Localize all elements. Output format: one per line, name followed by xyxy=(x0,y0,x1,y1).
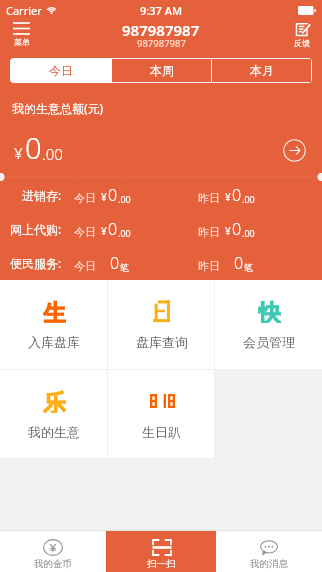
staticText: 今日 xyxy=(74,259,96,273)
staticText: ¥ xyxy=(101,190,107,204)
staticText: ¥ xyxy=(14,143,23,163)
staticText: .00 xyxy=(118,193,131,205)
staticText: 0 xyxy=(108,218,118,240)
staticText: 盘库查询 xyxy=(136,334,188,350)
staticText: 乐 xyxy=(43,389,66,413)
staticText: .00 xyxy=(118,227,131,239)
button[interactable]: 本月 xyxy=(212,59,311,82)
button[interactable]: 今日 xyxy=(11,59,111,82)
staticText: 今日 xyxy=(74,225,96,239)
button[interactable]: 生日趴 xyxy=(108,370,215,458)
staticText: 0 xyxy=(234,252,244,274)
staticText: 我的金币 xyxy=(34,558,72,570)
staticText: 本月 xyxy=(250,63,274,78)
staticText: 入库盘库 xyxy=(28,334,80,350)
staticText: Carrier xyxy=(6,3,42,18)
button[interactable]: 扫一扫 xyxy=(106,530,216,572)
staticText: 反馈 xyxy=(294,38,310,48)
staticText: 生 xyxy=(43,299,66,323)
staticText: 昨日 xyxy=(198,259,220,273)
button[interactable]: 便民服务: xyxy=(0,246,322,280)
staticText: .00 xyxy=(242,227,255,239)
staticText: ¥ xyxy=(225,190,231,204)
button[interactable]: 生 xyxy=(0,280,108,369)
button[interactable]: 我的消息 xyxy=(216,530,322,572)
button[interactable]: 菜单 xyxy=(8,20,35,49)
staticText: 笔 xyxy=(244,262,253,273)
staticText: 987987987 xyxy=(122,20,200,40)
staticText: ¥ xyxy=(101,224,107,238)
staticText: 本周 xyxy=(150,63,174,78)
staticText: ¥ xyxy=(225,224,231,238)
staticText: 昨日 xyxy=(198,191,220,205)
staticText: .00 xyxy=(242,193,255,205)
staticText: 0 xyxy=(108,184,118,206)
staticText: 会员管理 xyxy=(243,334,295,350)
staticText: 0 xyxy=(25,128,42,167)
staticText: .00 xyxy=(42,144,63,164)
button[interactable]: 盘库查询 xyxy=(108,280,215,369)
button[interactable]: 快 xyxy=(215,280,322,369)
staticText: 便民服务: xyxy=(10,255,62,271)
staticText: 我的消息 xyxy=(250,558,288,570)
staticText: 987987987 xyxy=(137,37,186,50)
staticText: 0 xyxy=(110,252,120,274)
staticText: 笔 xyxy=(120,262,129,273)
staticText: 快 xyxy=(258,299,281,323)
button[interactable]: 本周 xyxy=(112,59,211,82)
staticText: 菜单 xyxy=(14,37,30,47)
staticText: 网上代购: xyxy=(10,221,62,237)
staticText: 扫一扫 xyxy=(147,558,176,570)
staticText: 昨日 xyxy=(198,225,220,239)
button[interactable]: 查看详情 xyxy=(283,139,306,162)
button[interactable]: 进销存: xyxy=(0,178,322,212)
staticText: 我的生意 xyxy=(28,424,80,440)
staticText: 0 xyxy=(232,218,242,240)
staticText: 我的生意总额(元) xyxy=(12,100,104,116)
staticText: 进销存: xyxy=(22,187,62,203)
staticText: 今日 xyxy=(74,191,96,205)
staticText: 今日 xyxy=(49,63,73,78)
staticText: 0 xyxy=(232,184,242,206)
staticText: 9:37 AM xyxy=(140,3,183,18)
button[interactable]: 乐 xyxy=(0,370,108,458)
button[interactable]: 反馈 xyxy=(290,20,314,50)
button[interactable]: 网上代购: xyxy=(0,212,322,246)
staticText: 生日趴 xyxy=(142,424,181,440)
button[interactable]: 我的金币 xyxy=(0,530,106,572)
